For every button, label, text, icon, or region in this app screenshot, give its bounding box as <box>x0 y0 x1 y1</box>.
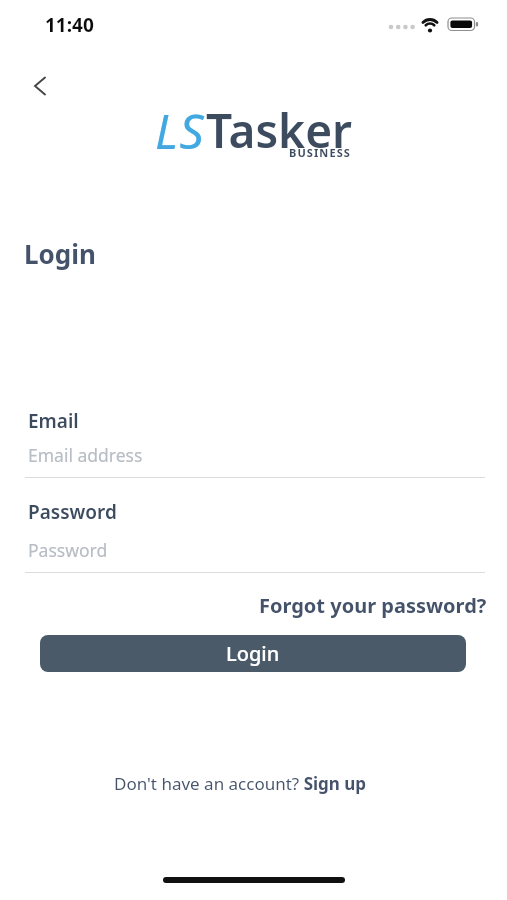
staticText: Email <box>28 408 79 434</box>
staticText: BUSINESS <box>289 145 351 160</box>
button[interactable]: Password <box>25 535 485 573</box>
button[interactable]: Email address <box>25 440 485 478</box>
staticText: Login <box>24 236 96 271</box>
staticText: Password <box>28 499 117 525</box>
button[interactable]: Forgot your password? <box>259 592 487 619</box>
staticText: 11:40 <box>45 12 94 38</box>
staticText: LS <box>155 98 206 163</box>
staticText: Tasker <box>206 99 353 162</box>
button[interactable] <box>20 66 60 106</box>
staticText: Password <box>28 538 108 562</box>
staticText: Login <box>226 640 280 667</box>
button[interactable]: Login <box>40 635 466 672</box>
button[interactable]: Don't have an account? Sign up <box>114 772 367 795</box>
staticText: Email address <box>28 443 143 467</box>
